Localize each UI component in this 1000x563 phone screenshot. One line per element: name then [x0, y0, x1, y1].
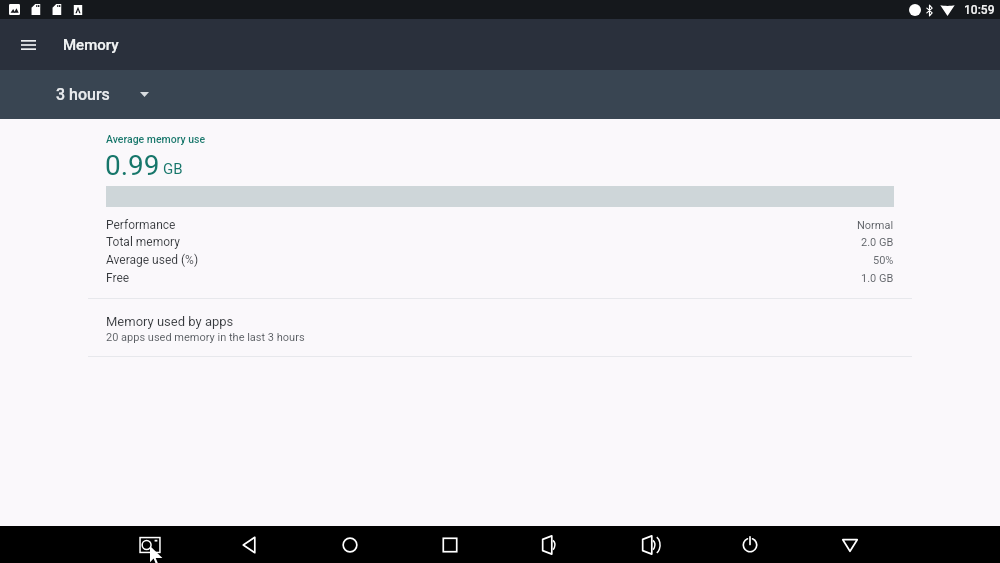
staticText: Performance — [106, 218, 176, 232]
staticText: 1.0 GB — [861, 272, 894, 285]
button[interactable]: Home — [300, 526, 400, 563]
staticText: Free — [106, 271, 130, 285]
button[interactable]: 3 hours — [46, 76, 163, 113]
staticText: Average memory use — [106, 133, 206, 145]
staticText: 2.0 GB — [861, 236, 894, 249]
staticText: Average used (%) — [106, 253, 199, 267]
button[interactable]: Power — [700, 526, 800, 563]
button[interactable]: Hide navigation bar — [800, 526, 900, 563]
button[interactable]: Memory used by apps — [88, 300, 912, 355]
button[interactable]: Volume down — [500, 526, 600, 563]
staticText: Normal — [857, 219, 894, 232]
button[interactable]: Volume up — [600, 526, 700, 563]
staticText: Memory — [63, 36, 119, 54]
staticText: GB — [163, 160, 183, 178]
button[interactable]: Navigation menu — [10, 27, 46, 63]
button[interactable]: Screenshot — [100, 526, 200, 563]
staticText: 10:59 — [964, 3, 995, 17]
button[interactable]: Back — [200, 526, 300, 563]
staticText: 3 hours — [56, 85, 110, 104]
staticText: Total memory — [106, 235, 180, 249]
staticText: Memory used by apps — [106, 314, 234, 329]
staticText: 20 apps used memory in the last 3 hours — [106, 331, 305, 344]
staticText: 0.99 — [105, 149, 160, 182]
staticText: 50% — [873, 254, 894, 267]
button[interactable]: Recent apps — [400, 526, 500, 563]
